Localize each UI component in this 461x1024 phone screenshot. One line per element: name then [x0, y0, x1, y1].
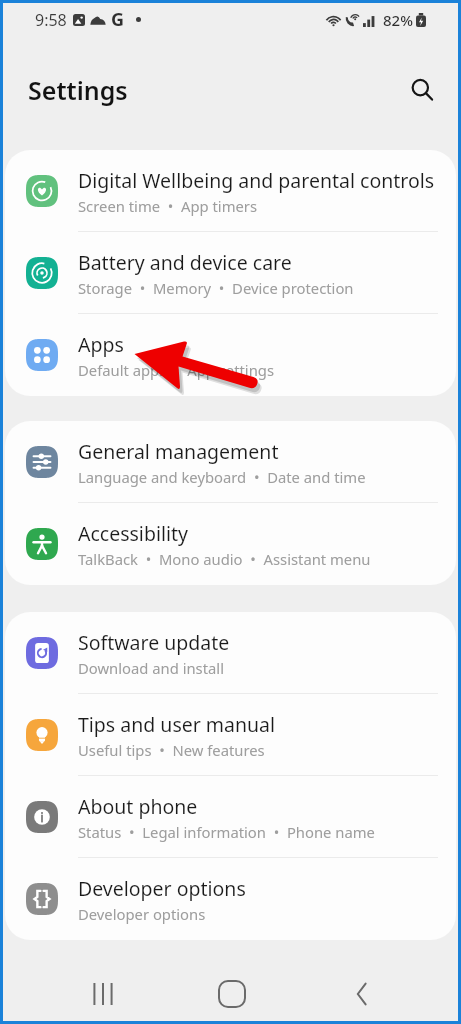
staticText: Settings [28, 73, 128, 107]
staticText: Useful tips • New features [78, 740, 265, 760]
staticText: Status • Legal information • Phone name [78, 822, 375, 842]
staticText: Default apps • App settings [78, 360, 275, 380]
staticText: 82% [383, 10, 413, 30]
staticText: Download and install [78, 658, 224, 678]
button[interactable]: Search [402, 70, 442, 110]
staticText: TalkBack • Mono audio • Assistant menu [78, 549, 371, 569]
staticText: Tips and user manual [78, 711, 276, 738]
staticText: Accessibility [78, 520, 188, 547]
button[interactable]: About phone [5, 776, 456, 858]
staticText: 9:58 [35, 9, 67, 31]
button[interactable]: Accessibility [5, 503, 456, 585]
button[interactable]: Software update [5, 612, 456, 694]
staticText: G [111, 7, 125, 32]
staticText: Software update [78, 629, 230, 656]
staticText: Developer options [78, 904, 206, 924]
staticText: Developer options [78, 875, 246, 902]
button[interactable]: General management [5, 421, 456, 503]
button[interactable]: Tips and user manual [5, 694, 456, 776]
button[interactable]: Digital Wellbeing and parental controls [5, 150, 456, 232]
staticText: General management [78, 438, 279, 465]
staticText: Digital Wellbeing and parental controls [78, 167, 435, 194]
button[interactable]: Developer options [5, 858, 456, 940]
button[interactable]: Back [337, 969, 387, 1019]
staticText: Storage • Memory • Device protection [78, 278, 354, 298]
button[interactable]: Home [207, 969, 257, 1019]
staticText: Screen time • App timers [78, 196, 258, 216]
staticText: Language and keyboard • Date and time [78, 467, 366, 487]
button[interactable]: Battery and device care [5, 232, 456, 314]
staticText: About phone [78, 793, 198, 820]
button[interactable]: Recents [78, 969, 128, 1019]
button[interactable]: Apps [5, 314, 456, 396]
staticText: Battery and device care [78, 249, 292, 276]
staticText: Apps [78, 331, 124, 358]
